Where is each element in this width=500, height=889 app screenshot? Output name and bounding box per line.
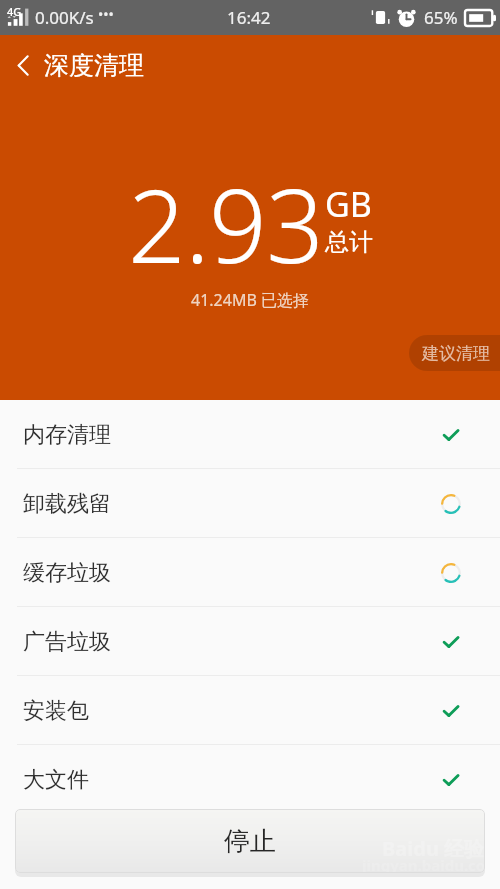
staticText: 41.24MB 已选择 bbox=[191, 289, 309, 311]
button[interactable]: 缓存垃圾 bbox=[0, 538, 500, 607]
button[interactable]: 内存清理 bbox=[0, 400, 500, 469]
staticText: 大文件 bbox=[23, 766, 89, 794]
staticText: ••• bbox=[98, 5, 114, 24]
staticText: 4G bbox=[7, 4, 22, 19]
staticText: jingyan.baidu.com bbox=[362, 855, 485, 873]
staticText: 0.00K/s bbox=[35, 6, 94, 29]
button[interactable]: 广告垃圾 bbox=[0, 607, 500, 676]
button[interactable]: Baidu 经验 bbox=[15, 809, 485, 873]
staticText: 65% bbox=[424, 6, 458, 29]
staticText: 广告垃圾 bbox=[23, 628, 111, 656]
staticText: 深度清理 bbox=[44, 50, 144, 81]
button[interactable]: 大文件 bbox=[0, 745, 500, 814]
staticText: 2.93 bbox=[128, 155, 324, 293]
staticText: 缓存垃圾 bbox=[23, 559, 111, 587]
staticText: 内存清理 bbox=[23, 421, 111, 449]
button[interactable]: 建议清理 bbox=[409, 335, 500, 371]
staticText: 总计 bbox=[325, 227, 373, 257]
staticText: 停止 bbox=[224, 825, 276, 858]
staticText: 安装包 bbox=[23, 697, 89, 725]
button[interactable]: 卸载残留 bbox=[0, 469, 500, 538]
staticText: 建议清理 bbox=[422, 343, 490, 364]
button[interactable]: 安装包 bbox=[0, 676, 500, 745]
staticText: 卸载残留 bbox=[23, 490, 111, 518]
staticText: GB bbox=[325, 181, 372, 227]
staticText: 16:42 bbox=[227, 6, 271, 29]
button[interactable]: Back bbox=[6, 48, 40, 82]
